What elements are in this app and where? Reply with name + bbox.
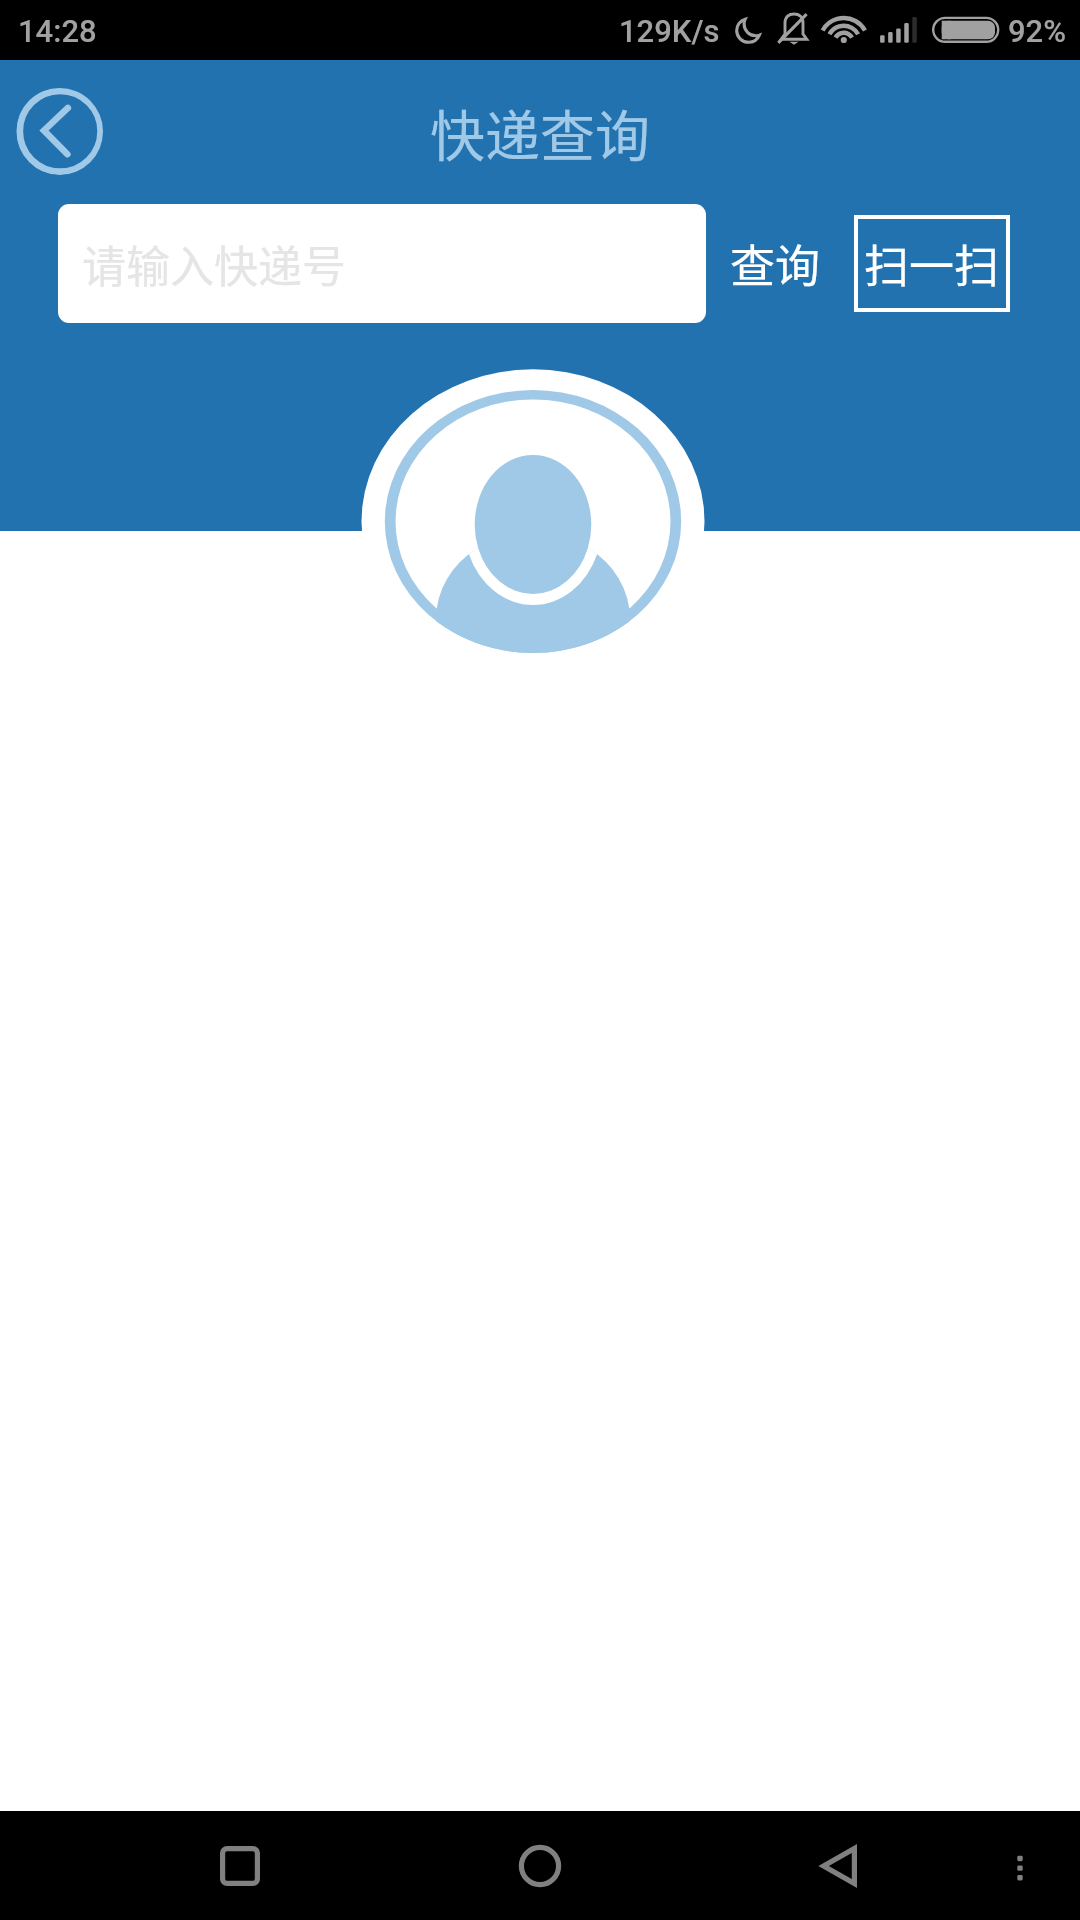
button[interactable]: 查询 [726,215,824,312]
staticText: 扫一扫 [864,231,1000,296]
button[interactable]: Recent apps [200,1826,280,1906]
button[interactable]: Back [800,1826,880,1906]
button[interactable]: Back [16,88,103,175]
staticText: 129K/s [619,13,720,49]
staticText: 14:28 [18,13,97,49]
button[interactable]: 请输入快递号 [58,204,706,323]
staticText: 查询 [730,231,821,296]
button[interactable]: 扫一扫 [854,215,1010,312]
staticText: 快递查询 [430,92,651,172]
staticText: 92% [1008,13,1067,49]
staticText: 请输入快递号 [82,232,346,296]
button[interactable]: Home [500,1826,580,1906]
button[interactable]: Menu [990,1826,1050,1886]
